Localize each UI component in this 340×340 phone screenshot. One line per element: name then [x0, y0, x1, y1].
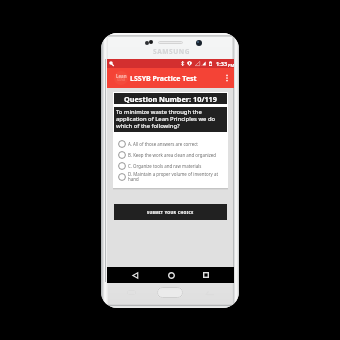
staticText: B. Keep the work area clean and organize… — [128, 152, 216, 158]
button[interactable]: Home — [163, 267, 179, 283]
button[interactable]: SUBMIT YOUR CHOICE — [114, 204, 227, 220]
button[interactable]: B. Keep the work area clean and organize… — [114, 149, 227, 160]
staticText: LSSYB Practice Test — [130, 74, 197, 84]
staticText: 1:33 — [216, 60, 228, 68]
staticText: SAMSUNG — [153, 47, 191, 56]
button[interactable]: Back — [127, 267, 143, 283]
staticText: C. Organize tools and raw materials — [128, 163, 202, 169]
button[interactable]: D. Maintain a proper volume of inventory… — [114, 171, 227, 182]
staticText: PM — [228, 63, 235, 68]
staticText: Question Number: 10/119 — [124, 94, 217, 104]
button[interactable]: More options — [220, 71, 234, 85]
staticText: D. Maintain a proper volume of inventory… — [128, 171, 224, 182]
staticText: Lean — [116, 73, 127, 79]
button[interactable]: C. Organize tools and raw materials — [114, 160, 227, 171]
staticText: To minimize waste through the applicatio… — [116, 108, 220, 130]
staticText: A. All of those answers are correct — [128, 141, 198, 147]
staticText: SUBMIT YOUR CHOICE — [147, 210, 194, 215]
button[interactable]: Recents — [198, 267, 214, 283]
staticText: SIGMA — [117, 78, 126, 82]
button[interactable]: A. All of those answers are correct — [114, 138, 227, 149]
